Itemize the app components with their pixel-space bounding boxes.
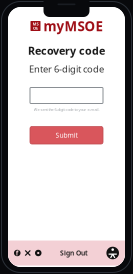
staticText: Enter 6-digit code [29,63,104,75]
staticText: Sign Out [60,249,88,257]
staticText: OE [33,25,38,31]
button[interactable]: Submit [30,126,103,144]
staticText: myMSOE [43,17,102,35]
staticText: Submit [55,131,77,140]
button[interactable]: Facebook [14,250,20,256]
staticText: Recovery code [28,43,105,58]
button[interactable]: Instagram [35,250,41,256]
staticText: f [16,249,19,257]
staticText: We sent the 6-digit code to your e-mail. [33,107,99,112]
button[interactable]: Accessibility options [106,247,119,259]
staticText: MS [32,21,38,26]
button[interactable]: Sign Out [60,249,88,257]
button[interactable]: X [24,250,31,256]
